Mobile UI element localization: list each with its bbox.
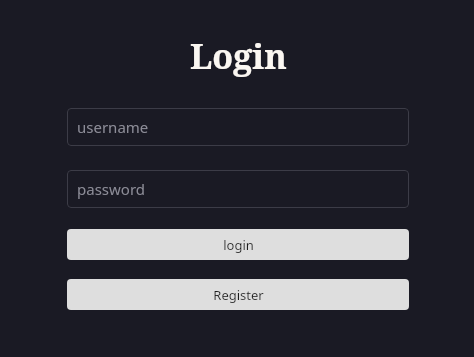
button[interactable]: username [67,108,409,146]
staticText: password [77,179,145,199]
button[interactable]: Register [67,279,409,310]
staticText: Register [213,286,264,304]
staticText: Login [190,33,287,79]
button[interactable]: login [67,229,409,260]
staticText: username [77,117,149,137]
button[interactable]: password [67,170,409,208]
staticText: login [223,236,254,254]
